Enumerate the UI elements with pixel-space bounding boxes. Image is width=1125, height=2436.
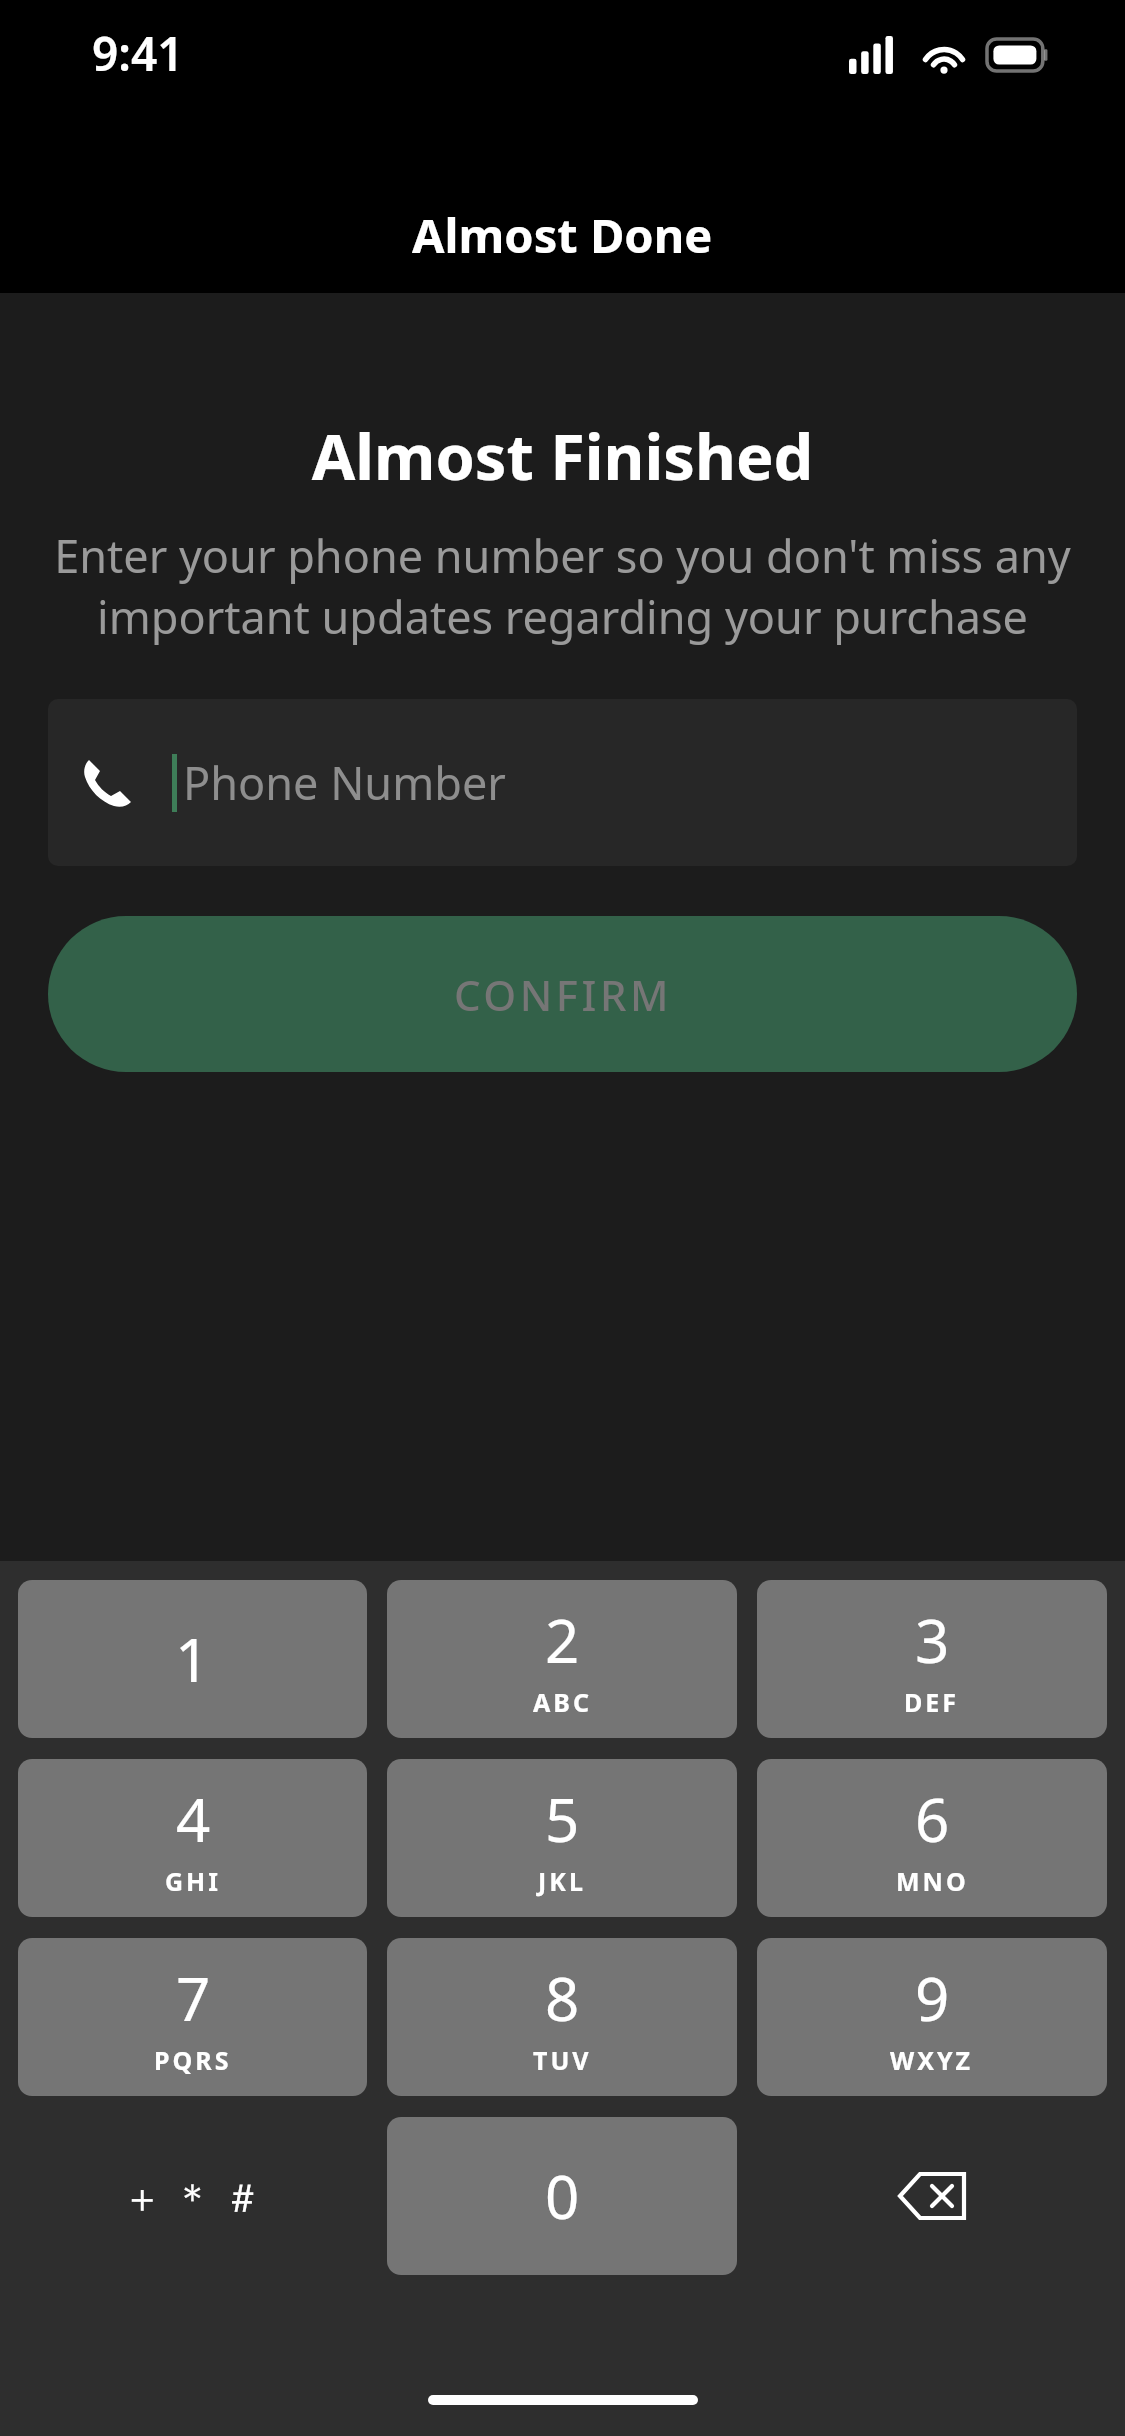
staticText: TUV (533, 2043, 592, 2077)
button[interactable]: 6 (757, 1759, 1107, 1917)
staticText: PQRS (154, 2043, 232, 2077)
staticText: DEF (904, 1685, 960, 1719)
staticText: 6 (915, 1778, 950, 1860)
button[interactable]: ＋ ＊ ＃ (18, 2117, 367, 2275)
button[interactable]: 4 (18, 1759, 367, 1917)
staticText: Almost Done (412, 203, 713, 267)
staticText: CONFIRM (454, 966, 672, 1023)
staticText: 9:41 (92, 22, 184, 85)
button[interactable]: 3 (757, 1580, 1107, 1738)
button[interactable]: 5 (387, 1759, 737, 1917)
staticText: ABC (533, 1685, 592, 1719)
staticText: ＋ ＊ ＃ (122, 2169, 263, 2224)
button[interactable]: 8 (387, 1938, 737, 2096)
staticText: MNO (896, 1864, 969, 1898)
staticText: GHI (165, 1864, 221, 1898)
staticText: Almost Finished (0, 413, 1125, 499)
button[interactable]: 1 (18, 1580, 367, 1738)
staticText: Phone Number (183, 752, 506, 813)
staticText: Enter your phone number so you don't mis… (36, 525, 1089, 647)
button[interactable]: 7 (18, 1938, 367, 2096)
button[interactable]: 9 (757, 1938, 1107, 2096)
staticText: 7 (176, 1957, 211, 2039)
staticText: 2 (545, 1599, 580, 1681)
staticText: 1 (175, 1618, 210, 1700)
button[interactable]: 0 (387, 2117, 737, 2275)
staticText: 9 (915, 1957, 950, 2039)
staticText: JKL (538, 1864, 586, 1898)
staticText: 4 (176, 1778, 211, 1860)
staticText: 5 (545, 1778, 580, 1860)
button[interactable]: 2 (387, 1580, 737, 1738)
staticText: 3 (915, 1599, 950, 1681)
staticText: 8 (545, 1957, 580, 2039)
staticText: WXYZ (890, 2043, 974, 2077)
staticText: 0 (545, 2155, 580, 2237)
button[interactable]: CONFIRM (48, 916, 1077, 1072)
button[interactable]: Phone Number (48, 699, 1077, 866)
button[interactable]: Backspace (757, 2117, 1107, 2275)
